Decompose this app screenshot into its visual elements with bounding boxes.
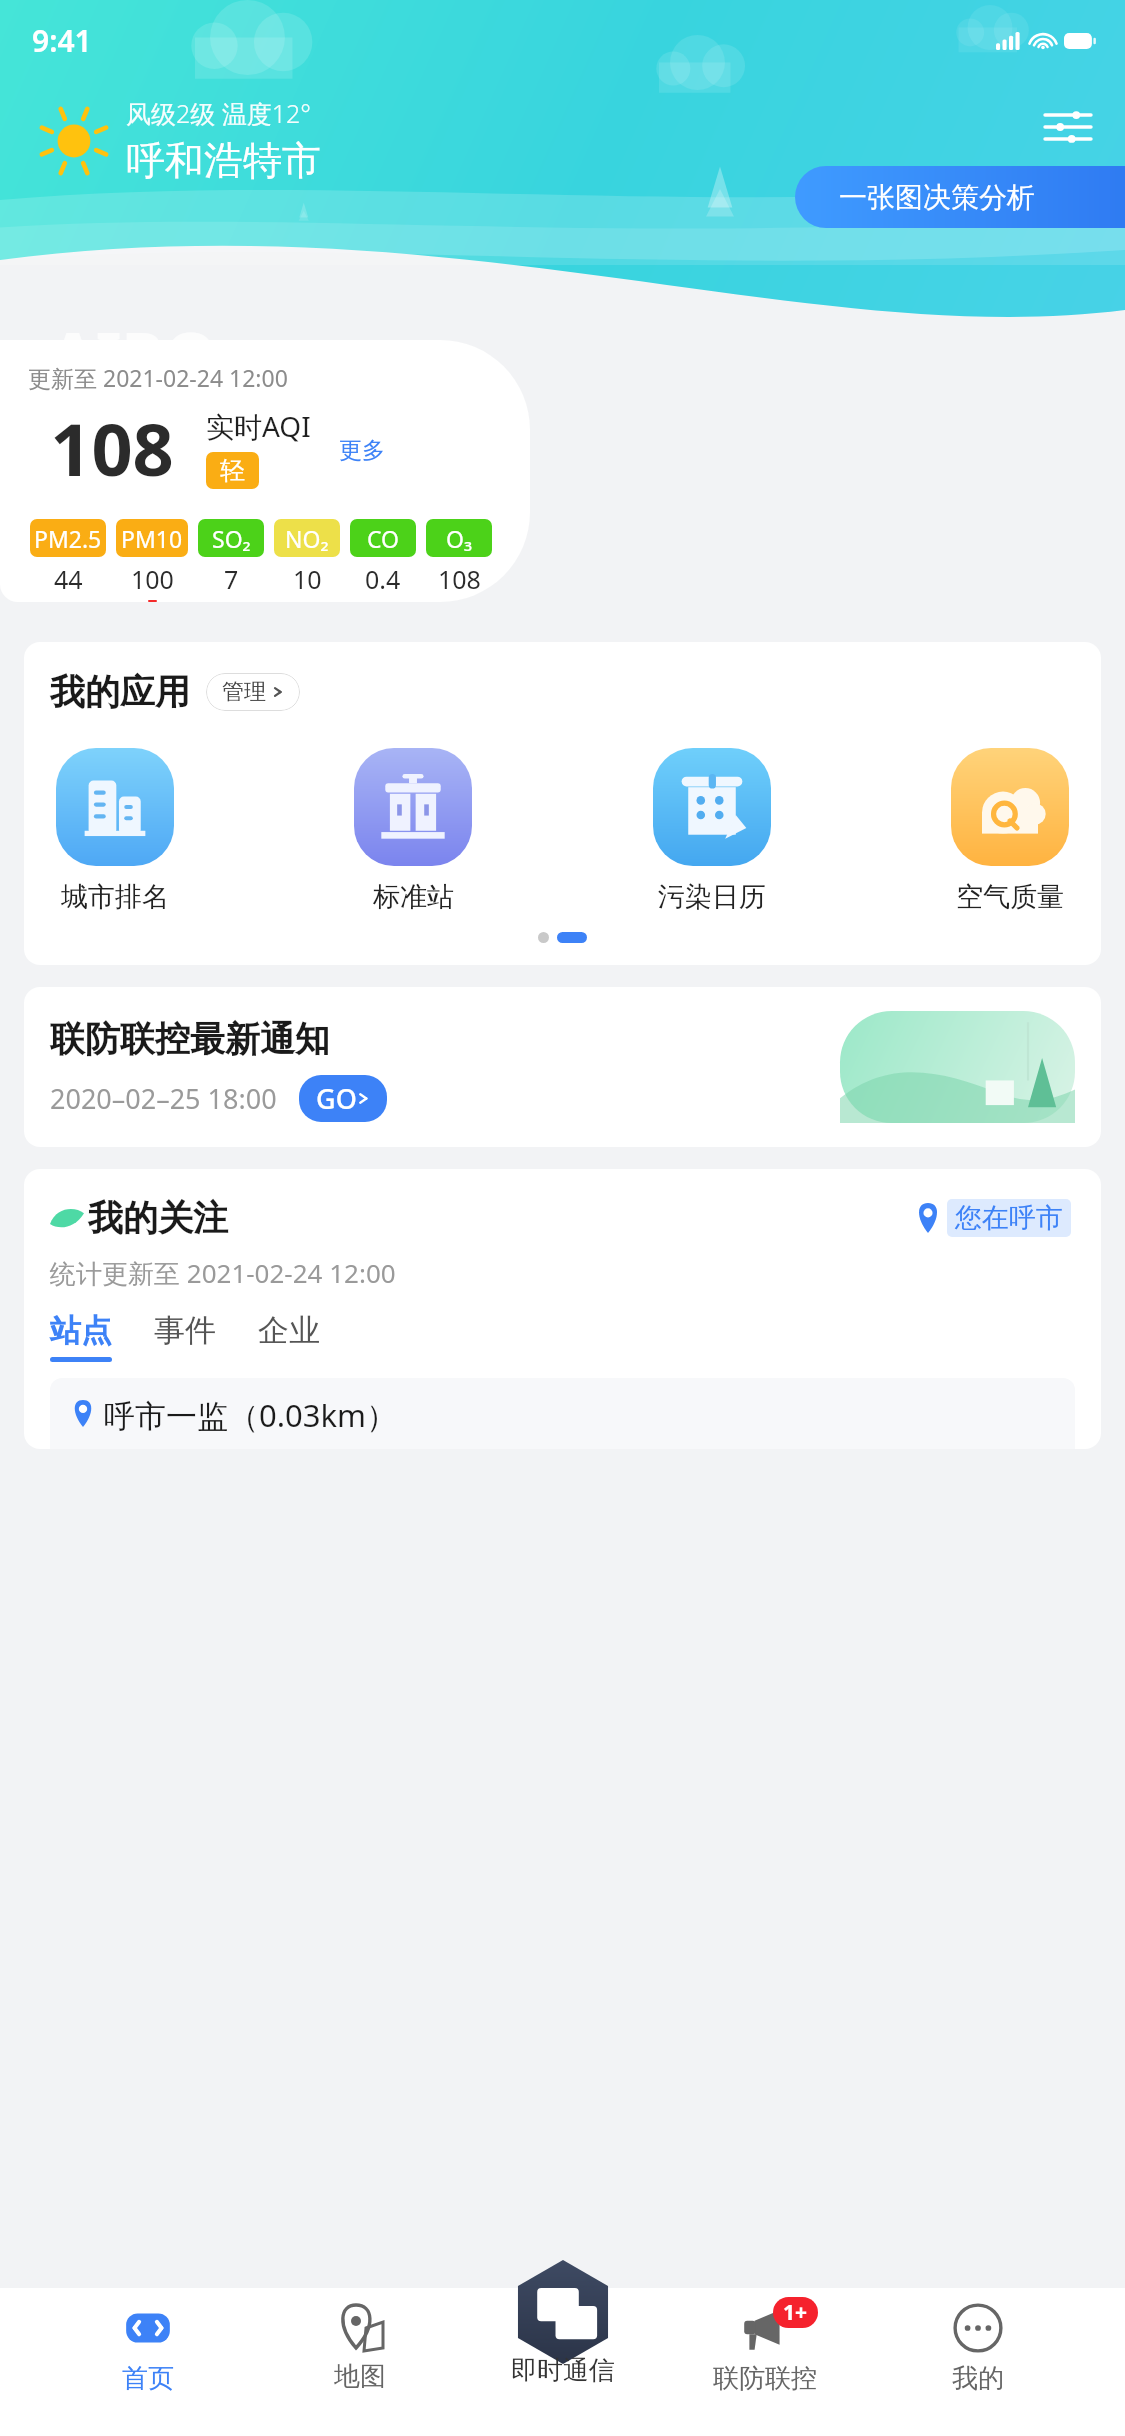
button[interactable]: 站点 xyxy=(50,1311,112,1362)
button[interactable]: 更新至 2021-02-24 12:00 xyxy=(0,340,530,602)
staticText: 风级2级 温度12° xyxy=(126,96,312,130)
staticText: 108 xyxy=(438,562,481,596)
staticText: GO xyxy=(316,1080,357,1117)
staticText: AIRO xyxy=(50,310,217,400)
staticText: O₃ xyxy=(446,523,473,554)
staticText: 事件 xyxy=(154,1311,216,1350)
button[interactable]: 管理 xyxy=(206,673,300,711)
button[interactable]: 地图 xyxy=(295,2302,425,2393)
button[interactable]: 联防联控最新通知 xyxy=(24,987,1101,1147)
button[interactable]: 1+ xyxy=(700,2302,830,2395)
button[interactable]: 企业 xyxy=(258,1311,320,1362)
staticText: 大气环境监测监管 xyxy=(50,406,314,448)
button[interactable]: 城市排名 xyxy=(50,748,180,914)
staticText: 空气质量 xyxy=(956,880,1064,914)
staticText: SO₂ xyxy=(212,523,251,554)
button[interactable]: 首页 xyxy=(83,2302,213,2395)
button[interactable]: 我的 xyxy=(913,2302,1043,2395)
button[interactable]: GO xyxy=(299,1075,387,1122)
staticText: CO xyxy=(367,523,400,554)
staticText: 企业 xyxy=(258,1311,320,1350)
button[interactable]: 事件 xyxy=(154,1311,216,1362)
staticText: 统计更新至 2021-02-24 12:00 xyxy=(50,1255,396,1291)
staticText: 首页 xyxy=(122,2362,174,2395)
staticText: 地图 xyxy=(334,2360,386,2393)
staticText: 管理 xyxy=(222,678,266,706)
staticText: 9:41 xyxy=(32,20,92,61)
staticText: 我的关注 xyxy=(88,1196,228,1240)
staticText: NO₂ xyxy=(285,523,329,554)
button[interactable]: 污染日历 xyxy=(647,748,777,914)
staticText: 标准站 xyxy=(373,880,454,914)
staticText: 一张图决策分析 xyxy=(839,180,1035,215)
staticText: 您在呼市 xyxy=(955,1201,1063,1235)
staticText: 2020–02–25 18:00 xyxy=(50,1080,277,1117)
button[interactable]: 更多 xyxy=(339,436,385,465)
button[interactable]: 您在呼市 xyxy=(912,1195,1075,1241)
staticText: 联防联控 xyxy=(713,2362,817,2395)
staticText: 即时通信 xyxy=(511,2354,615,2387)
staticText: 我的 xyxy=(952,2362,1004,2395)
staticText: PM10 xyxy=(121,523,183,554)
staticText: 10 xyxy=(293,562,322,596)
staticText: 0.4 xyxy=(365,562,401,596)
staticText: 100 xyxy=(131,562,174,596)
staticText: 实时AQI xyxy=(206,407,311,445)
button[interactable]: 空气质量 xyxy=(945,748,1075,914)
button[interactable]: 设置 xyxy=(1041,100,1095,154)
staticText: 1+ xyxy=(783,2298,808,2327)
staticText: 更新至 2021-02-24 12:00 xyxy=(28,362,288,393)
staticText: PM2.5 xyxy=(34,523,102,554)
button[interactable]: 标准站 xyxy=(348,748,478,914)
staticText: 7 xyxy=(224,562,239,596)
staticText: 城市排名 xyxy=(61,880,169,914)
button[interactable]: 一张图决策分析 xyxy=(795,166,1125,228)
staticText: 站点 xyxy=(50,1311,112,1350)
button[interactable]: 即时通信 xyxy=(511,2260,615,2364)
staticText: 108 xyxy=(28,399,196,497)
staticText: 污染日历 xyxy=(658,880,766,914)
staticText: 44 xyxy=(54,562,83,596)
staticText: 联防联控最新通知 xyxy=(50,1017,330,1061)
staticText: 轻 xyxy=(220,455,245,486)
staticText: 我的应用 xyxy=(50,670,190,714)
staticText: 呼市一监（0.03km） xyxy=(104,1394,398,1433)
button[interactable]: 呼市一监（0.03km） xyxy=(50,1378,1075,1449)
staticText: 更多 xyxy=(339,436,385,465)
staticText: 呼和浩特市 xyxy=(126,136,321,185)
